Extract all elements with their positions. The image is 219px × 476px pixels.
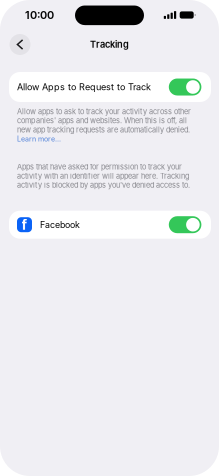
- staticText: new app tracking requests are automatica…: [17, 125, 190, 134]
- button[interactable]: Learn more...: [17, 134, 61, 143]
- button[interactable]: f: [9, 211, 211, 239]
- staticText: activity with an identifier will appear …: [17, 172, 189, 180]
- staticText: 10:00: [25, 8, 54, 22]
- staticText: f: [21, 216, 27, 233]
- button[interactable]: Back: [6, 31, 33, 58]
- staticText: Facebook: [40, 219, 80, 230]
- staticText: Learn more...: [17, 135, 61, 143]
- staticText: Tracking: [90, 39, 129, 50]
- staticText: Allow apps to ask to track your activity…: [17, 107, 191, 116]
- staticText: Allow Apps to Request to Track: [17, 81, 151, 92]
- staticText: Apps that have asked for permission to t…: [17, 162, 182, 171]
- staticText: activity is blocked by apps you've denie…: [17, 181, 190, 190]
- button[interactable]: Allow Apps to Request to Track: [9, 72, 211, 102]
- staticText: companies' apps and websites. When this …: [17, 116, 187, 125]
